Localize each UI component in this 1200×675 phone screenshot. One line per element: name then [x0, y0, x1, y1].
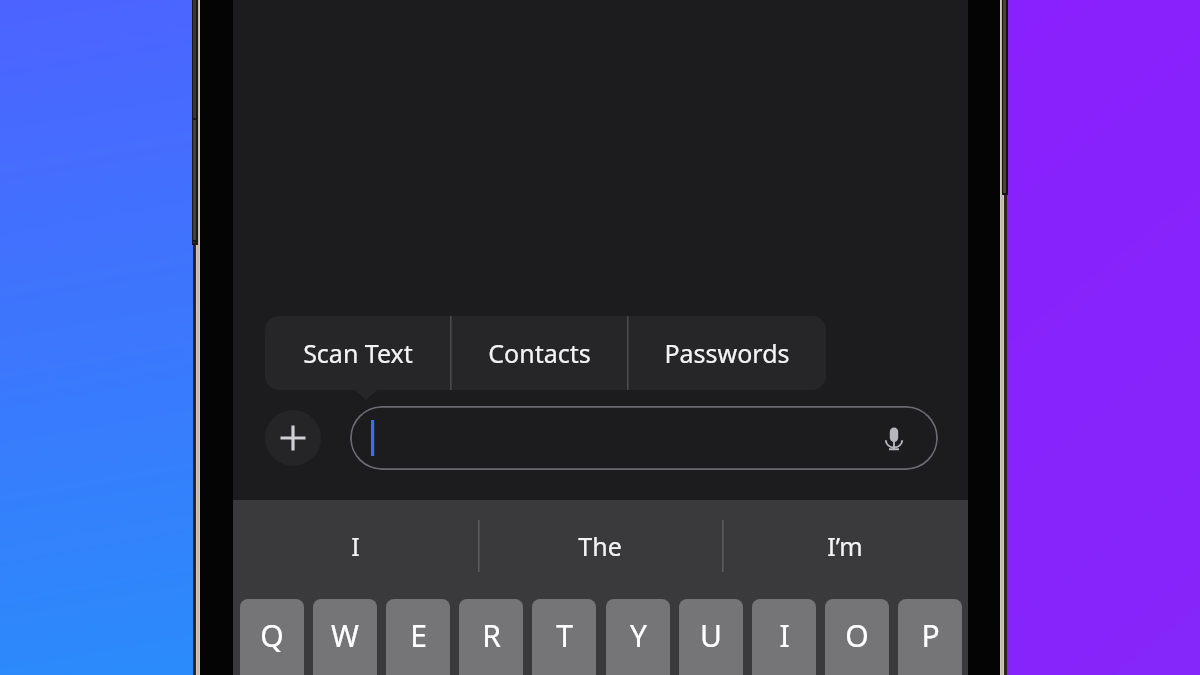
button[interactable]: Scan Text: [265, 316, 450, 390]
staticText: Contacts: [488, 336, 591, 370]
button[interactable]: P: [898, 599, 962, 675]
button[interactable]: W: [313, 599, 377, 675]
button[interactable]: I: [233, 508, 478, 584]
staticText: T: [556, 615, 573, 656]
button[interactable]: Passwords: [628, 316, 826, 390]
staticText: U: [700, 615, 722, 656]
button[interactable]: Add attachment: [265, 410, 321, 466]
staticText: R: [482, 615, 501, 656]
button[interactable]: Contacts: [451, 316, 627, 390]
button[interactable]: Dictate: [350, 406, 938, 470]
button[interactable]: R: [459, 599, 523, 675]
button[interactable]: Dictate: [873, 418, 915, 460]
button[interactable]: Q: [240, 599, 304, 675]
button[interactable]: O: [825, 599, 889, 675]
staticText: I: [351, 529, 360, 563]
button[interactable]: The: [478, 508, 722, 584]
staticText: I: [779, 615, 790, 656]
button[interactable]: Y: [606, 599, 670, 675]
staticText: P: [921, 615, 940, 656]
staticText: Y: [630, 615, 647, 656]
staticText: W: [331, 615, 359, 656]
staticText: Passwords: [664, 336, 790, 370]
staticText: O: [845, 615, 869, 656]
staticText: Q: [260, 615, 284, 656]
staticText: E: [410, 615, 427, 656]
button[interactable]: I’m: [722, 508, 968, 584]
button[interactable]: T: [532, 599, 596, 675]
button[interactable]: U: [679, 599, 743, 675]
staticText: I’m: [827, 529, 863, 563]
staticText: Scan Text: [303, 336, 413, 370]
staticText: The: [578, 529, 622, 563]
button[interactable]: I: [752, 599, 816, 675]
button[interactable]: E: [386, 599, 450, 675]
